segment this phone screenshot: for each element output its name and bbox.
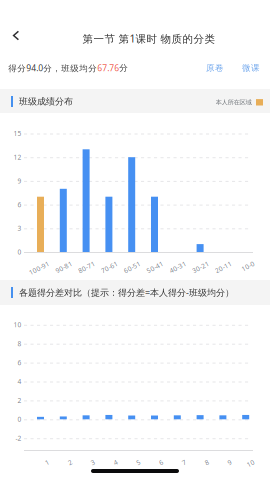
staticText: 8 (205, 457, 209, 466)
staticText: 10-0 (240, 258, 254, 267)
staticText: 20-11 (213, 258, 231, 267)
staticText: 各题得分差对比（提示：得分差=本人得分-班级均分） (19, 286, 234, 299)
staticText: 分 (119, 63, 128, 73)
staticText: 15 (13, 129, 21, 138)
staticText: 6 (17, 358, 21, 367)
staticText: 微课 (242, 63, 260, 73)
staticText: 9 (227, 457, 231, 466)
staticText: 0 (17, 415, 21, 424)
staticText: 8 (17, 339, 21, 348)
staticText: 60-51 (122, 258, 140, 267)
staticText: 9 (17, 176, 21, 185)
staticText: 得分94.0分，班级均分 (8, 62, 97, 74)
staticText: 100-91 (27, 258, 49, 267)
staticText: 12 (13, 153, 21, 162)
staticText: 70-61 (99, 258, 117, 267)
staticText: 1 (45, 457, 49, 466)
staticText: 90-81 (54, 258, 72, 267)
staticText: 67.76 (97, 62, 119, 74)
staticText: 3 (17, 224, 21, 233)
staticText: 4 (113, 457, 117, 466)
button[interactable]: 原卷 (200, 61, 230, 75)
staticText: 0 (17, 247, 21, 256)
staticText: 班级成绩分布 (19, 96, 73, 107)
staticText: 6 (17, 200, 21, 209)
staticText: 本人所在区域 (215, 98, 251, 106)
staticText: 5 (136, 457, 140, 466)
staticText: 2 (68, 457, 72, 466)
staticText: 第一节 第1课时 物质的分类 (82, 31, 215, 46)
staticText: 30-21 (191, 258, 209, 267)
staticText: 6 (159, 457, 163, 466)
staticText: 2 (17, 396, 21, 405)
staticText: 10 (246, 457, 254, 466)
staticText: -2 (15, 434, 21, 443)
staticText: 40-31 (168, 258, 186, 267)
button[interactable]: Back (0, 20, 32, 50)
staticText: 4 (17, 377, 21, 386)
staticText: 10 (13, 320, 21, 329)
staticText: 50-41 (145, 258, 163, 267)
staticText: 80-71 (77, 258, 95, 267)
staticText: 3 (91, 457, 95, 466)
staticText: 原卷 (206, 63, 224, 73)
button[interactable]: 微课 (236, 61, 266, 75)
staticText: 7 (182, 457, 186, 466)
